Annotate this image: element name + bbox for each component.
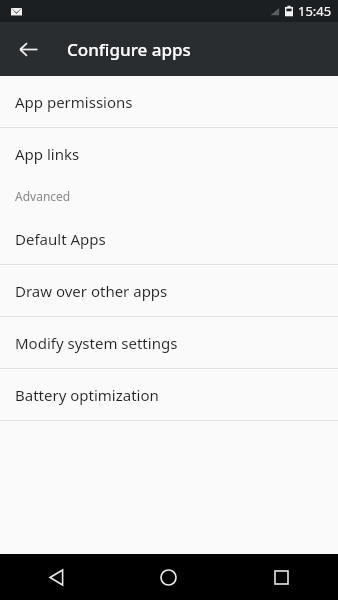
button[interactable]: Home: [112, 554, 225, 600]
staticText: Draw over other apps: [15, 281, 168, 301]
button[interactable]: Modify system settings: [0, 317, 338, 368]
staticText: Modify system settings: [15, 333, 178, 353]
button[interactable]: Default Apps: [0, 213, 338, 264]
button[interactable]: Draw over other apps: [0, 265, 338, 316]
staticText: 15:45: [298, 2, 332, 20]
button[interactable]: Back: [0, 554, 112, 600]
button[interactable]: App permissions: [0, 76, 338, 127]
button[interactable]: Battery optimization: [0, 369, 338, 420]
button[interactable]: App links: [0, 128, 338, 179]
button[interactable]: Recent apps: [225, 554, 338, 600]
staticText: App links: [15, 144, 80, 164]
staticText: Advanced: [15, 188, 71, 204]
button[interactable]: Navigate up: [10, 31, 46, 67]
staticText: Configure apps: [67, 38, 191, 61]
staticText: App permissions: [15, 92, 133, 112]
staticText: Default Apps: [15, 229, 106, 249]
staticText: Battery optimization: [15, 385, 159, 405]
